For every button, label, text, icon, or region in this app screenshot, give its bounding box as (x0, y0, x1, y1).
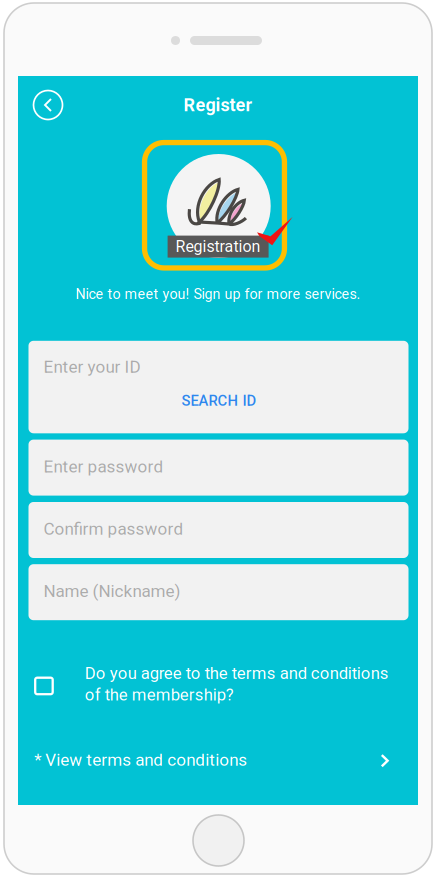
staticText: of the membership? (85, 685, 234, 704)
button[interactable]: Confirm password (28, 502, 408, 558)
staticText: Registration (176, 237, 261, 256)
button[interactable]: Agree to terms (27, 670, 61, 702)
button[interactable]: Name (Nickname) (28, 564, 408, 620)
button[interactable]: * View terms and conditions (18, 737, 418, 785)
button[interactable]: Back (28, 85, 67, 124)
staticText: Nice to meet you! Sign up for more servi… (75, 286, 360, 302)
staticText: * View terms and conditions (34, 750, 247, 770)
button[interactable]: Enter your ID (28, 341, 408, 433)
staticText: Name (Nickname) (43, 581, 180, 601)
staticText: Register (183, 94, 252, 116)
staticText: Enter your ID (43, 357, 140, 377)
staticText: SEARCH ID (181, 392, 256, 409)
staticText: Do you agree to the terms and conditions (85, 663, 389, 683)
staticText: Enter password (43, 457, 163, 477)
button[interactable]: Enter password (28, 440, 408, 496)
staticText: Confirm password (43, 519, 183, 539)
